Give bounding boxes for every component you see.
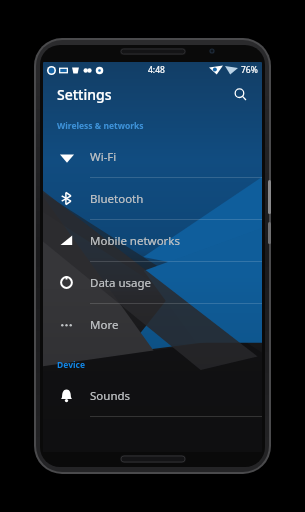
button[interactable]: Sounds	[43, 375, 262, 417]
staticText: Sounds	[90, 388, 131, 404]
staticText: Wi-Fi	[90, 149, 117, 165]
staticText: Data usage	[90, 275, 152, 291]
staticText: 4:48	[148, 64, 165, 76]
button[interactable]: Data usage	[43, 262, 262, 304]
button[interactable]: Mobile networks	[43, 220, 262, 262]
staticText: Settings	[57, 85, 112, 104]
staticText: 76%	[241, 64, 258, 76]
staticText: Mobile networks	[90, 233, 181, 249]
staticText: More	[90, 317, 119, 333]
button[interactable]: More	[43, 304, 262, 345]
button[interactable]: Search	[228, 82, 252, 106]
staticText: Wireless & networks	[57, 120, 144, 132]
button[interactable]: Bluetooth	[43, 178, 262, 220]
staticText: Bluetooth	[90, 191, 144, 207]
button[interactable]: Wi-Fi	[43, 136, 262, 178]
staticText: Device	[57, 359, 85, 371]
